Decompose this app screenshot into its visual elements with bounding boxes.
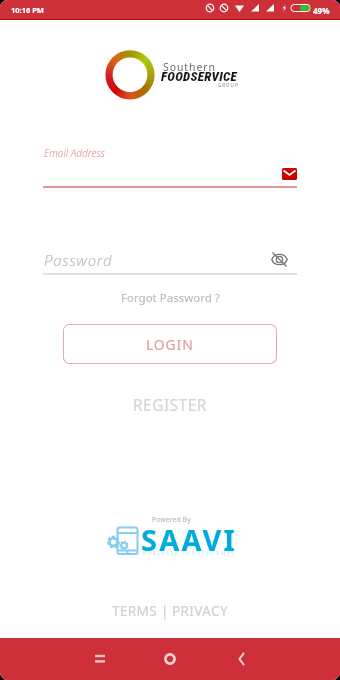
button[interactable]: Recents [80,638,120,680]
button[interactable]: LOGIN [63,324,277,364]
button[interactable]: TERMS [111,602,159,620]
staticText: GROUP [218,82,239,88]
button[interactable]: Home [150,638,190,680]
button[interactable]: Back [222,638,262,680]
button[interactable]: PRIVACY [171,602,230,620]
staticText: | [161,602,169,620]
staticText: 10:16 PM [11,5,44,15]
staticText: Password [44,250,113,270]
staticText: FOODSERVICE [161,69,237,84]
staticText: PRIVACY [172,602,229,620]
staticText: REGISTER [133,394,207,414]
staticText: Email Address [44,146,105,160]
staticText: TERMS [112,602,158,620]
staticText: Southern [163,60,216,74]
button[interactable]: Show password [271,252,288,267]
button[interactable]: Email [282,168,297,180]
staticText: Forgot Password ? [121,290,220,306]
button[interactable]: REGISTER [0,394,340,414]
staticText: 49% [313,5,330,16]
staticText: SAAVI [141,520,238,559]
staticText: Powered By [152,515,191,525]
staticText: LOGIN [146,335,194,354]
button[interactable]: Forgot Password ? [0,289,340,307]
staticText: BUSINESS TRANSFORMED [143,550,237,557]
